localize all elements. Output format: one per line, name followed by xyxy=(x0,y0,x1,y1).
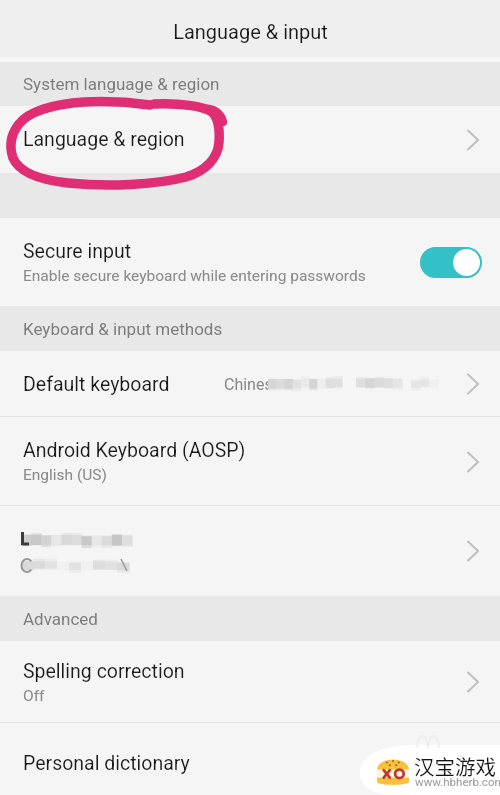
button[interactable] xyxy=(0,506,500,596)
button[interactable]: Default keyboard xyxy=(0,351,500,417)
staticText: Default keyboard xyxy=(23,373,170,396)
staticText: Personal dictionary xyxy=(23,752,190,775)
button[interactable]: Secure input toggle xyxy=(420,247,482,278)
button[interactable]: Personal dictionary xyxy=(0,723,500,795)
button[interactable]: Android Keyboard (AOSP) xyxy=(0,417,500,506)
staticText: Spelling correction xyxy=(23,660,185,683)
staticText: System language & region xyxy=(23,74,220,94)
button[interactable]: Language & region xyxy=(0,106,500,173)
button[interactable]: Secure input xyxy=(0,218,500,306)
staticText: Language & region xyxy=(23,128,185,151)
staticText: www.hbherb.com xyxy=(415,775,500,788)
staticText: English (US) xyxy=(23,466,107,484)
staticText: Keyboard & input methods xyxy=(23,319,223,339)
staticText: Android Keyboard (AOSP) xyxy=(23,439,246,462)
staticText: Language & input xyxy=(173,20,328,43)
staticText: Advanced xyxy=(23,609,98,629)
staticText: Off xyxy=(23,687,45,705)
staticText: Secure input xyxy=(23,240,132,263)
button[interactable]: Spelling correction xyxy=(0,641,500,723)
staticText: Chinese xyxy=(224,375,282,394)
staticText: 汉宝游戏 xyxy=(414,751,496,781)
staticText: Enable secure keyboard while entering pa… xyxy=(23,267,366,285)
